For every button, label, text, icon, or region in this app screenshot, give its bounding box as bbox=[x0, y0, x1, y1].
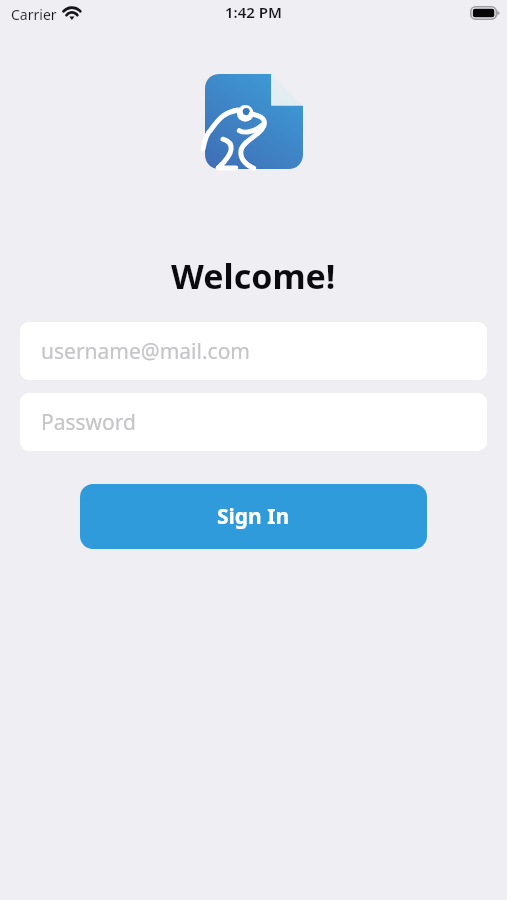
button[interactable]: Password bbox=[20, 393, 487, 451]
staticText: Welcome! bbox=[171, 253, 336, 299]
staticText: Carrier bbox=[11, 5, 57, 24]
staticText: Sign In bbox=[217, 502, 290, 531]
staticText: username@mail.com bbox=[41, 337, 250, 366]
staticText: Password bbox=[41, 408, 136, 437]
other: App logo bbox=[205, 74, 303, 169]
other: Battery bbox=[470, 6, 500, 20]
button[interactable]: username@mail.com bbox=[20, 322, 487, 380]
staticText: 1:42 PM bbox=[225, 2, 282, 22]
button[interactable]: Sign In bbox=[80, 484, 427, 549]
